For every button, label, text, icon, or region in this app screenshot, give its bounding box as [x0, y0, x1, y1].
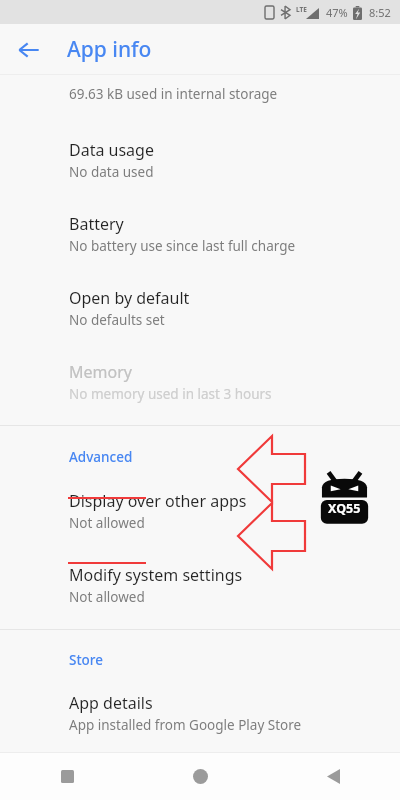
staticText: App info: [67, 35, 152, 64]
staticText: Not allowed: [69, 588, 145, 606]
staticText: Battery: [69, 213, 124, 235]
staticText: Modify system settings: [69, 564, 243, 586]
button[interactable]: Display over other apps: [0, 490, 400, 532]
button[interactable]: Home: [134, 752, 267, 800]
button[interactable]: Back: [267, 752, 400, 800]
staticText: LTE: [296, 5, 307, 14]
button: Memory: [0, 361, 400, 403]
staticText: Open by default: [69, 287, 190, 309]
staticText: 47%: [326, 5, 348, 20]
staticText: XQ55: [328, 500, 361, 517]
staticText: Display over other apps: [69, 490, 247, 512]
staticText: Memory: [69, 361, 132, 383]
button[interactable]: Recent apps: [0, 752, 134, 800]
staticText: Store: [69, 651, 104, 669]
staticText: Not allowed: [69, 514, 145, 532]
staticText: App installed from Google Play Store: [69, 716, 302, 734]
staticText: No memory used in last 3 hours: [69, 385, 272, 403]
staticText: Data usage: [69, 139, 154, 161]
staticText: No battery use since last full charge: [69, 237, 296, 255]
button[interactable]: Back: [8, 29, 50, 71]
button[interactable]: Open by default: [0, 287, 400, 329]
staticText: Advanced: [69, 448, 133, 466]
staticText: No data used: [69, 163, 154, 181]
staticText: App details: [69, 692, 153, 714]
button[interactable]: Modify system settings: [0, 564, 400, 606]
staticText: 8:52: [369, 5, 391, 20]
staticText: 69.63 kB used in internal storage: [69, 85, 278, 103]
button[interactable]: Battery: [0, 213, 400, 255]
button[interactable]: Data usage: [0, 139, 400, 181]
staticText: No defaults set: [69, 311, 165, 329]
button[interactable]: App details: [0, 692, 400, 734]
